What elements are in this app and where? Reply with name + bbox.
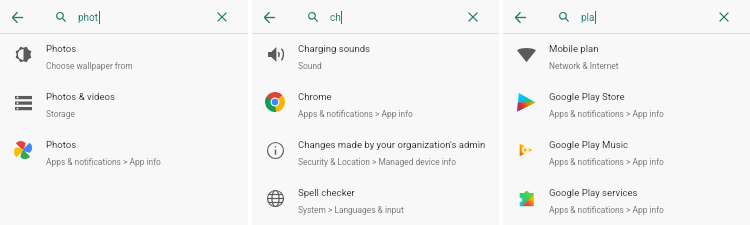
button[interactable]: Google Play Store bbox=[503, 82, 750, 130]
staticText: Network & Internet bbox=[549, 61, 619, 71]
staticText: Chrome bbox=[298, 91, 332, 102]
staticText: Apps & notifications > App info bbox=[549, 109, 664, 119]
staticText: Choose wallpaper from bbox=[46, 61, 133, 71]
staticText: Apps & notifications > App info bbox=[549, 205, 664, 215]
button[interactable]: Google Play services bbox=[503, 178, 750, 225]
staticText: Security & Location > Managed device inf… bbox=[298, 157, 457, 167]
button[interactable]: Photos bbox=[0, 130, 248, 178]
staticText: Photos bbox=[46, 43, 77, 54]
staticText: pla bbox=[581, 12, 595, 24]
staticText: Storage bbox=[46, 109, 75, 119]
staticText: Apps & notifications > App info bbox=[298, 109, 413, 119]
staticText: ch bbox=[330, 12, 341, 24]
staticText: Charging sounds bbox=[298, 43, 371, 54]
staticText: Apps & notifications > App info bbox=[549, 157, 664, 167]
button[interactable]: Mobile plan bbox=[503, 34, 750, 82]
staticText: Spell checker bbox=[298, 187, 355, 198]
staticText: Google Play services bbox=[549, 187, 638, 198]
button[interactable]: Spell checker bbox=[252, 178, 499, 225]
button[interactable]: Back bbox=[252, 0, 286, 34]
staticText: Mobile plan bbox=[549, 43, 599, 54]
staticText: Photos & videos bbox=[46, 91, 115, 102]
staticText: Apps & notifications > App info bbox=[46, 157, 161, 167]
button[interactable]: Back bbox=[503, 0, 537, 34]
staticText: Sound bbox=[298, 61, 322, 71]
staticText: Photos bbox=[46, 139, 77, 150]
button[interactable]: Changes made by your organization's admi… bbox=[252, 130, 499, 178]
button[interactable]: Chrome bbox=[252, 82, 499, 130]
button[interactable]: Back bbox=[0, 0, 34, 34]
button[interactable]: Clear search bbox=[211, 6, 233, 28]
button[interactable]: Photos & videos bbox=[0, 82, 248, 130]
button[interactable]: Clear search bbox=[462, 6, 484, 28]
staticText: Google Play Music bbox=[549, 139, 629, 150]
staticText: Changes made by your organization's admi… bbox=[298, 139, 486, 150]
staticText: System > Languages & input bbox=[298, 205, 404, 215]
button[interactable]: Charging sounds bbox=[252, 34, 499, 82]
staticText: phot bbox=[78, 12, 99, 24]
button[interactable]: Google Play Music bbox=[503, 130, 750, 178]
button[interactable]: Photos bbox=[0, 34, 248, 82]
staticText: Google Play Store bbox=[549, 91, 625, 102]
button[interactable]: Clear search bbox=[713, 6, 735, 28]
